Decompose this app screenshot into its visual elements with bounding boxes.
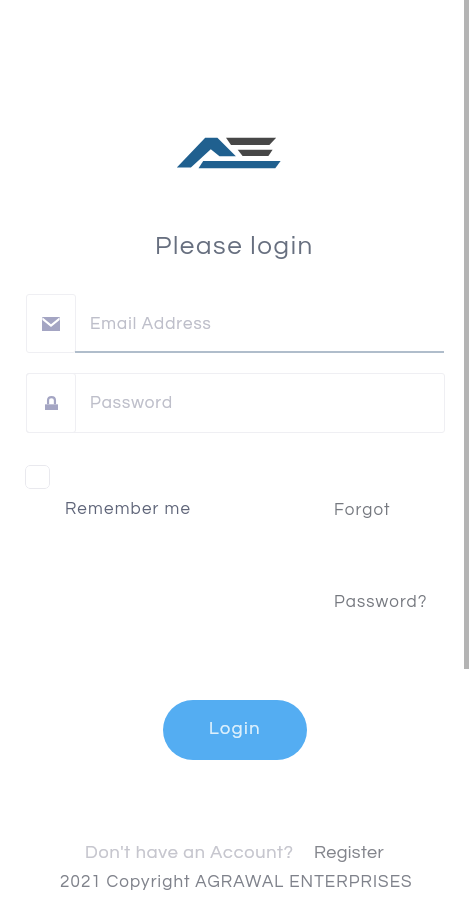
staticText: Login — [209, 719, 262, 738]
other: Email — [42, 317, 60, 331]
button[interactable]: Register — [314, 843, 385, 862]
button[interactable]: Remember me — [65, 500, 192, 518]
button[interactable]: Email — [26, 294, 445, 353]
button[interactable]: Password — [26, 373, 445, 433]
other: Password — [45, 396, 58, 410]
button[interactable]: Forgot Password? — [334, 501, 434, 611]
staticText: Email Address — [90, 315, 212, 333]
staticText: Please login — [155, 233, 314, 260]
staticText: 2021 Copyright AGRAWAL ENTERPRISES — [60, 873, 413, 891]
button[interactable] — [25, 465, 50, 489]
button[interactable]: Login — [163, 700, 307, 760]
staticText: Don't have an Account? — [85, 843, 294, 862]
staticText: Password — [90, 394, 174, 412]
